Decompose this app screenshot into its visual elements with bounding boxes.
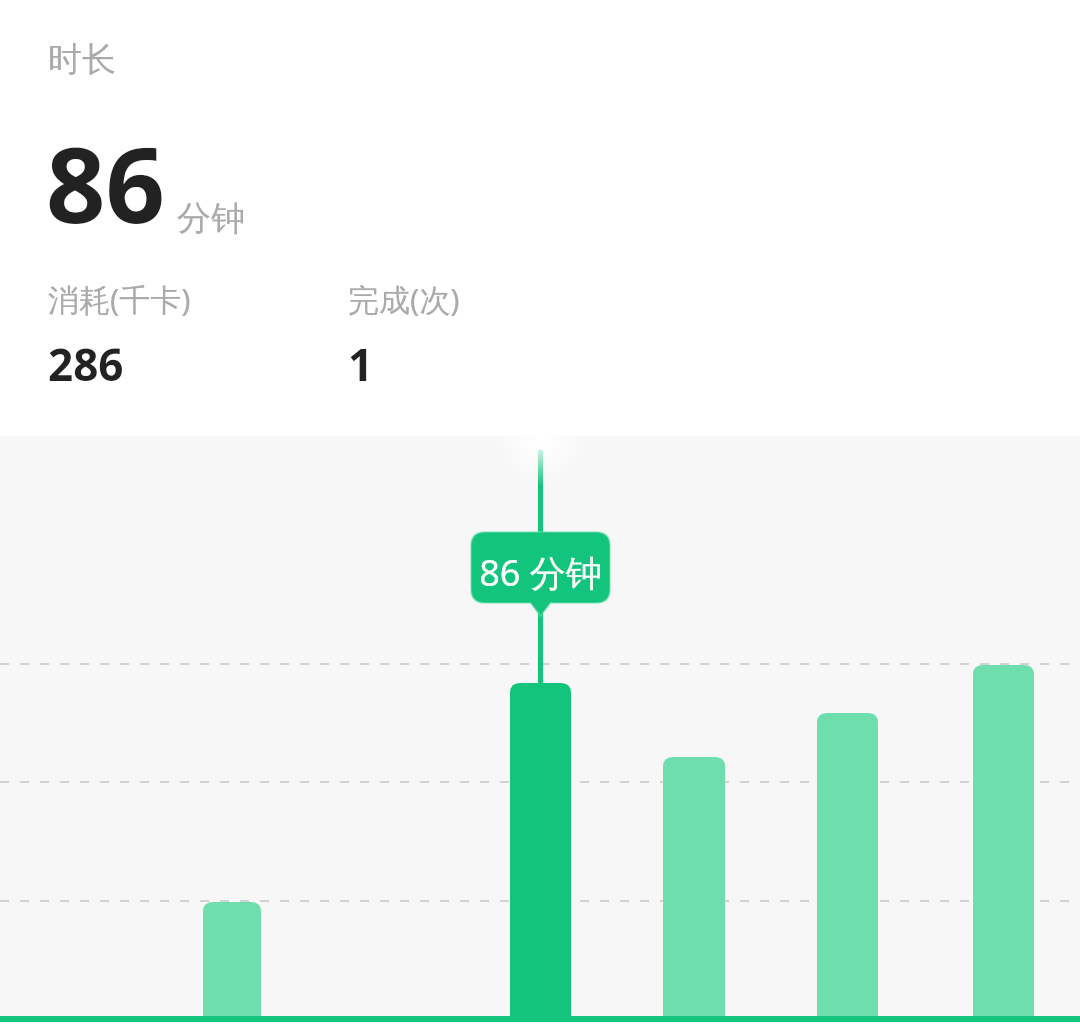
button[interactable]: Selected value 86 minutes	[471, 532, 610, 617]
staticText: 286	[48, 334, 124, 394]
button[interactable]: 完成(次)	[348, 278, 468, 394]
staticText: 86 分钟	[471, 548, 610, 597]
staticText: 1	[348, 334, 374, 394]
button[interactable]: Weekly duration bar chart	[0, 436, 1080, 1036]
staticText: 时长	[48, 38, 116, 81]
staticText: 分钟	[177, 197, 245, 240]
staticText: 消耗(千卡)	[48, 278, 191, 320]
button[interactable]: 消耗(千卡)	[48, 278, 199, 394]
staticText: 完成(次)	[348, 278, 460, 320]
staticText: 86	[46, 112, 165, 254]
